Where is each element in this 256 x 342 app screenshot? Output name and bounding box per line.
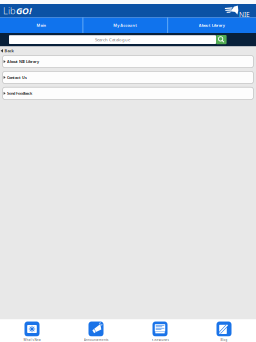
staticText: Search Catalogue: [95, 37, 130, 42]
button[interactable]: Search: [216, 35, 227, 44]
staticText: Contact Us: [7, 75, 27, 80]
staticText: e-Resources: [151, 338, 168, 342]
staticText: Blog: [220, 338, 227, 342]
button[interactable]: Back: [0, 46, 256, 55]
staticText: About NIE Library: [7, 59, 39, 64]
staticText: GO!: [16, 4, 32, 17]
staticText: Back: [4, 48, 13, 53]
button[interactable]: About NIE Library: [3, 55, 253, 68]
button[interactable]: e-Resources: [128, 319, 192, 342]
button[interactable]: What's New: [0, 319, 64, 342]
button[interactable]: Main: [0, 17, 82, 33]
staticText: NIE: [239, 10, 250, 19]
staticText: Announcements: [84, 338, 108, 342]
staticText: What's New: [23, 338, 40, 342]
button[interactable]: My Account: [83, 17, 167, 33]
staticText: Main: [36, 23, 46, 28]
button[interactable]: About Library: [168, 17, 255, 33]
staticText: About Library: [199, 23, 225, 28]
button[interactable]: Blog: [192, 319, 256, 342]
button[interactable]: Contact Us: [3, 71, 253, 84]
staticText: My Account: [113, 23, 137, 28]
button[interactable]: Announcements: [64, 319, 128, 342]
staticText: Send Feedback: [7, 91, 32, 96]
staticText: Lib: [3, 4, 16, 17]
button[interactable]: Send Feedback: [3, 87, 253, 99]
